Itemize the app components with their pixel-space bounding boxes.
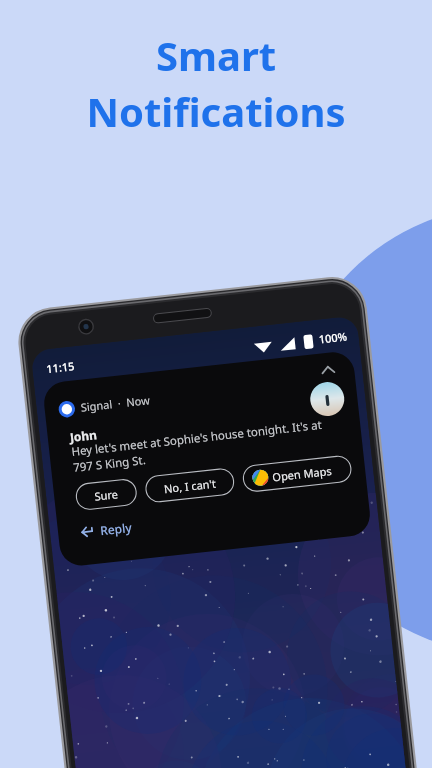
button[interactable] [0,0,432,768]
other: Smart Notifications promo [0,0,432,768]
